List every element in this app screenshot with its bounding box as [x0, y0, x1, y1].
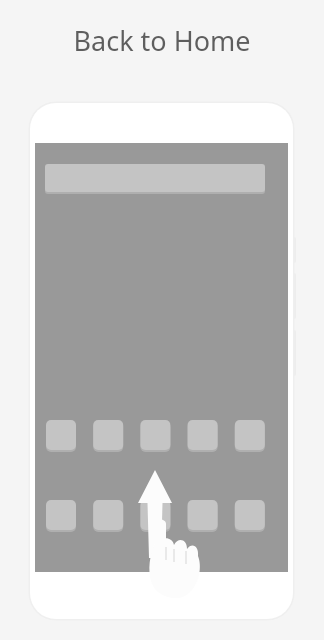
button[interactable]: Swipe up to go back to home screen	[0, 0, 324, 640]
button[interactable]: Back to Home	[73, 22, 251, 59]
staticText: Back to Home	[73, 22, 251, 59]
